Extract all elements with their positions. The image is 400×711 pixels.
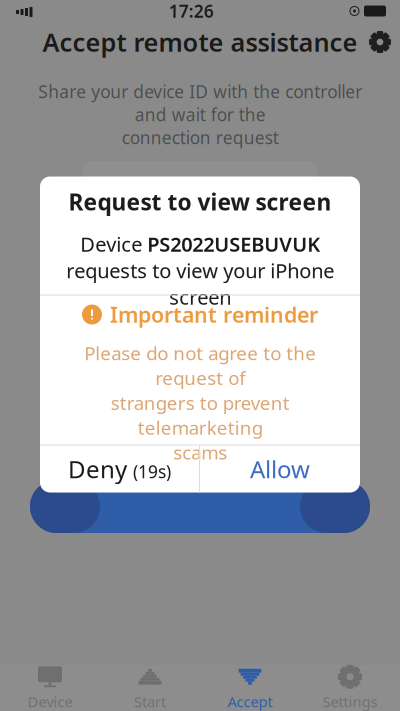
button[interactable]: Allow bbox=[200, 445, 360, 492]
staticText: Device bbox=[27, 692, 72, 711]
button[interactable]: Deny (19s) bbox=[40, 445, 199, 492]
staticText: Request to view screen bbox=[68, 187, 331, 217]
staticText: Your device ID bbox=[133, 187, 266, 214]
staticText: Please do not agree to the request of st… bbox=[84, 341, 316, 465]
staticText: Accept remote assistance bbox=[42, 25, 357, 59]
button[interactable]: Accept bbox=[200, 665, 300, 711]
button[interactable]: Settings bbox=[360, 22, 400, 62]
button[interactable]: Settings bbox=[300, 665, 400, 711]
staticText: 17:26 bbox=[169, 0, 214, 22]
staticText: Start bbox=[134, 692, 166, 711]
button[interactable] bbox=[30, 480, 370, 533]
staticText: Settings bbox=[322, 692, 377, 711]
staticText: Important reminder bbox=[110, 300, 318, 329]
staticText: Accept bbox=[227, 692, 272, 711]
staticText: Share your device ID with the controller… bbox=[38, 80, 362, 149]
staticText: Allow bbox=[250, 453, 310, 485]
button[interactable]: Device bbox=[0, 665, 100, 711]
staticText: Device PS2022USEBUVUK requests to view y… bbox=[66, 231, 334, 310]
staticText: Deny (19s) bbox=[68, 453, 171, 485]
button[interactable]: Start bbox=[100, 665, 200, 711]
